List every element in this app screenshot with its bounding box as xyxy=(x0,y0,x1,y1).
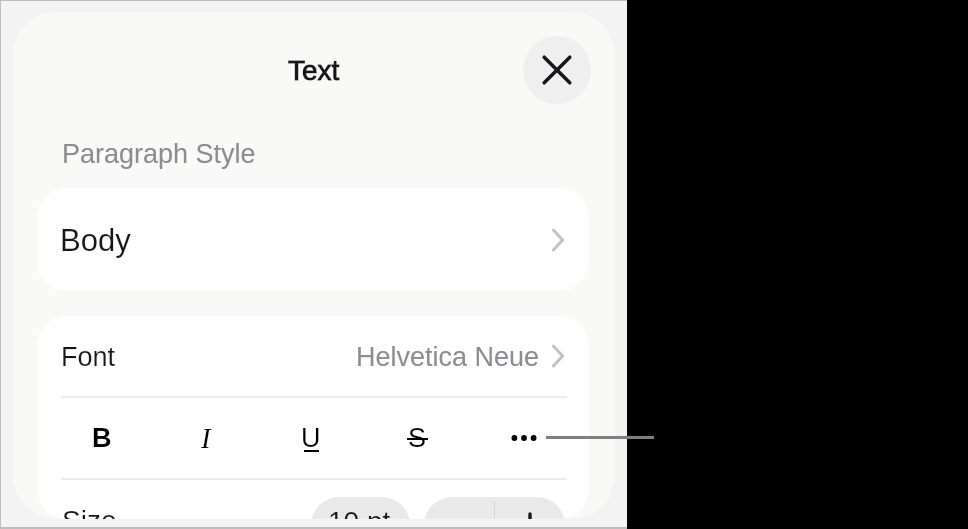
staticText: I xyxy=(201,422,211,454)
staticText: 10 pt xyxy=(328,506,391,519)
staticText: S xyxy=(408,423,427,453)
button[interactable]: Bold xyxy=(72,397,132,478)
button[interactable]: Decrease font size xyxy=(424,497,494,519)
button[interactable]: Italic xyxy=(176,397,236,478)
button[interactable]: Body xyxy=(37,188,589,291)
button[interactable]: Increase font size xyxy=(495,497,565,519)
staticText: Font xyxy=(61,342,116,372)
staticText: U xyxy=(301,423,321,453)
staticText: Paragraph Style xyxy=(62,139,256,169)
staticText: Text xyxy=(288,55,340,86)
button[interactable]: Close xyxy=(523,36,591,104)
staticText: Size xyxy=(62,505,117,519)
staticText: B xyxy=(92,423,112,453)
button[interactable]: Underline xyxy=(281,397,341,478)
button[interactable]: Font xyxy=(37,316,589,396)
button[interactable]: 10 pt xyxy=(311,497,410,519)
button[interactable]: Strikethrough xyxy=(387,397,447,478)
staticText: Helvetica Neue xyxy=(356,342,540,372)
staticText: Body xyxy=(60,223,131,258)
button[interactable]: More formatting options xyxy=(494,397,554,478)
